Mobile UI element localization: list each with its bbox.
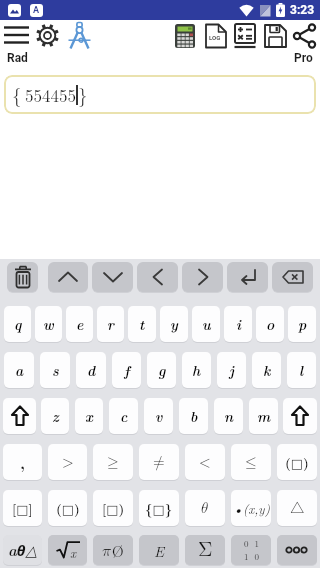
button[interactable]: a <box>4 352 34 388</box>
button[interactable]: b <box>179 398 208 434</box>
button[interactable]: Rad <box>7 51 28 65</box>
button[interactable]: 𝜋 <box>93 535 133 565</box>
button[interactable]: ≥ <box>93 444 133 480</box>
staticText: △ <box>290 501 305 516</box>
button[interactable]: c <box>109 398 138 434</box>
button[interactable]: d <box>76 352 106 388</box>
button[interactable]: u <box>192 306 220 342</box>
staticText: x <box>70 543 77 561</box>
button[interactable]: ≤ <box>231 444 271 480</box>
staticText: p <box>298 314 307 334</box>
staticText: < <box>199 455 211 470</box>
staticText: [□] <box>12 499 33 518</box>
staticText: l <box>299 360 304 380</box>
button[interactable]: j <box>217 352 246 388</box>
staticText: E <box>154 540 165 561</box>
button[interactable]: (□) <box>277 444 317 480</box>
button[interactable]: z <box>41 398 69 434</box>
button[interactable] <box>227 262 268 292</box>
button[interactable]: n <box>214 398 243 434</box>
button[interactable] <box>173 23 197 47</box>
staticText: { <box>12 81 22 108</box>
button[interactable] <box>182 262 223 292</box>
staticText: ≠ <box>153 455 165 470</box>
button[interactable]: l <box>287 352 316 388</box>
button[interactable]: k <box>252 352 281 388</box>
staticText: Σ <box>198 540 213 560</box>
staticText: LOG <box>209 34 221 41</box>
button[interactable]: 0 1 <box>231 535 271 565</box>
button[interactable] <box>277 535 317 565</box>
button[interactable]: Σ <box>185 535 225 565</box>
staticText: d <box>87 360 96 380</box>
button[interactable]: w <box>35 306 62 342</box>
button[interactable]: 𝜃 <box>185 490 225 526</box>
staticText: 1 0 <box>244 550 259 563</box>
button[interactable]: x <box>75 398 103 434</box>
button[interactable]: [□] <box>3 490 42 526</box>
staticText: n <box>224 406 234 426</box>
staticText: 𝜃 <box>201 501 209 516</box>
button[interactable]: > <box>48 444 87 480</box>
button[interactable]: [□) <box>93 490 133 526</box>
button[interactable]: △ <box>277 490 317 526</box>
button[interactable]: o <box>256 306 284 342</box>
button[interactable]: Pro <box>294 51 313 65</box>
button[interactable]: m <box>249 398 278 434</box>
staticText: j <box>229 360 234 380</box>
button[interactable] <box>7 262 38 292</box>
button[interactable] <box>137 262 178 292</box>
button[interactable] <box>3 22 30 49</box>
button[interactable] <box>293 23 317 47</box>
button[interactable]: ≠ <box>139 444 179 480</box>
button[interactable] <box>263 23 287 47</box>
button[interactable]: (□) <box>48 490 87 526</box>
staticText: (□) <box>56 499 80 518</box>
staticText: o <box>266 314 275 334</box>
button[interactable]: e <box>66 306 93 342</box>
button[interactable] <box>34 22 61 49</box>
button[interactable] <box>283 398 317 434</box>
button[interactable]: t <box>128 306 156 342</box>
staticText: t <box>139 314 145 334</box>
staticText: 𝜋 <box>102 543 112 559</box>
button[interactable] <box>3 398 36 434</box>
button[interactable] <box>92 262 133 292</box>
staticText: x <box>85 406 93 426</box>
staticText: A <box>33 5 40 16</box>
button[interactable]: aθ△ <box>3 535 42 565</box>
staticText: v <box>155 406 163 426</box>
button[interactable]: v <box>144 398 173 434</box>
button[interactable]: E <box>139 535 179 565</box>
button[interactable]: i <box>224 306 252 342</box>
staticText: f <box>124 360 130 380</box>
button[interactable]: h <box>182 352 211 388</box>
button[interactable] <box>66 22 93 49</box>
button[interactable]: f <box>112 352 141 388</box>
staticText: {□} <box>145 499 173 518</box>
button[interactable]: g <box>147 352 176 388</box>
staticText: 0 1 <box>244 537 259 550</box>
button[interactable]: {□} <box>139 490 179 526</box>
button[interactable] <box>272 262 313 292</box>
button[interactable]: x <box>48 535 87 565</box>
button[interactable]: { <box>4 75 316 114</box>
button[interactable]: r <box>97 306 124 342</box>
button[interactable]: y <box>160 306 188 342</box>
staticText: > <box>62 455 74 470</box>
button[interactable]: , <box>3 444 42 480</box>
button[interactable]: s <box>40 352 70 388</box>
button[interactable]: q <box>4 306 31 342</box>
button[interactable]: < <box>185 444 225 480</box>
button[interactable]: LOG <box>203 23 227 47</box>
staticText: m <box>257 406 271 426</box>
staticText: y <box>170 314 178 334</box>
button[interactable]: •(x,y) <box>231 490 271 526</box>
button[interactable]: p <box>288 306 316 342</box>
staticText: •(x,y) <box>233 499 270 517</box>
button[interactable] <box>48 262 88 292</box>
staticText: q <box>14 314 22 334</box>
staticText: } <box>78 81 88 108</box>
button[interactable] <box>233 23 257 47</box>
staticText: (□) <box>285 453 309 472</box>
